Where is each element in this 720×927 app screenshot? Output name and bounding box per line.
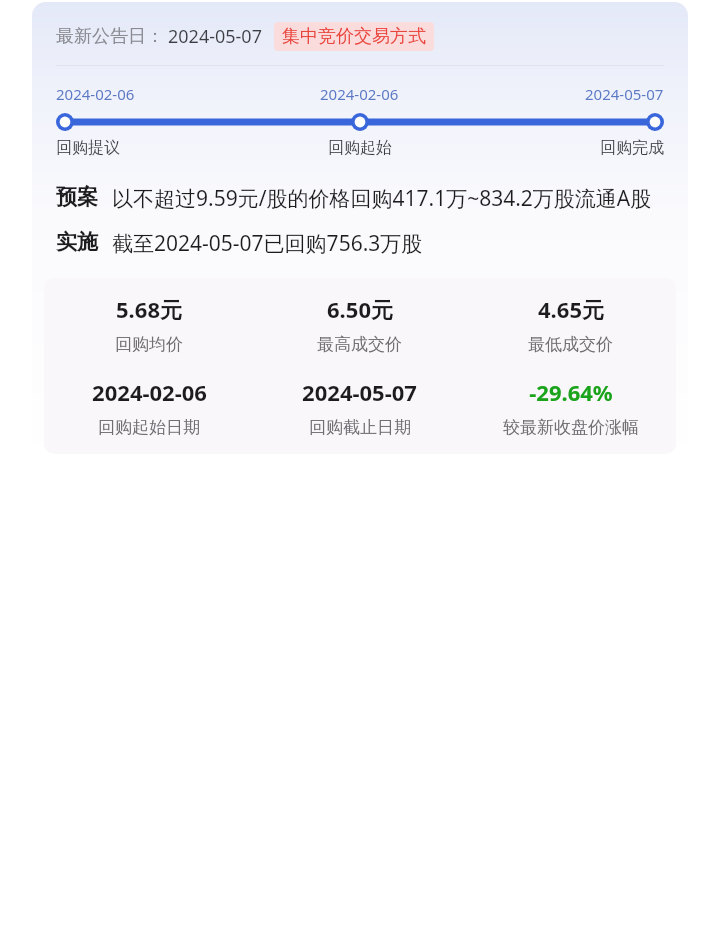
staticText: 2024-05-07 (168, 24, 262, 49)
staticText: 预案 (56, 184, 98, 210)
staticText: 5.68元 (116, 294, 182, 324)
staticText: 回购截止日期 (309, 417, 411, 438)
button[interactable]: 2024-02-06 (44, 377, 254, 438)
button[interactable]: 2024-05-07 (254, 377, 465, 438)
staticText: 较最新收盘价涨幅 (503, 417, 639, 438)
staticText: 2024-05-07 (302, 377, 417, 407)
staticText: 实施 (56, 229, 98, 255)
staticText: 4.65元 (538, 294, 604, 324)
staticText: 回购起始 (328, 138, 392, 158)
staticText: 回购均价 (115, 334, 183, 355)
staticText: 最低成交价 (528, 334, 613, 355)
staticText: -29.64% (529, 377, 613, 407)
staticText: 回购提议 (56, 138, 120, 158)
staticText: 2024-02-06 (56, 84, 135, 104)
staticText: 回购起始日期 (98, 417, 200, 438)
staticText: 截至2024-05-07已回购756.3万股 (112, 229, 423, 258)
button[interactable]: -29.64% (465, 377, 676, 438)
button[interactable]: 集中竞价交易方式 (274, 22, 434, 51)
staticText: 以不超过9.59元/股的价格回购417.1万~834.2万股流通A股 (112, 184, 652, 213)
staticText: 集中竞价交易方式 (282, 25, 426, 48)
staticText: 2024-02-06 (320, 84, 399, 104)
staticText: 回购完成 (600, 138, 664, 158)
staticText: 2024-02-06 (92, 377, 207, 407)
staticText: 2024-05-07 (585, 84, 664, 104)
button[interactable]: 6.50元 (254, 294, 465, 355)
button[interactable]: 5.68元 (44, 294, 254, 355)
staticText: 最高成交价 (317, 334, 402, 355)
staticText: 6.50元 (327, 294, 393, 324)
button[interactable]: 4.65元 (465, 294, 676, 355)
staticText: 最新公告日： (56, 25, 164, 48)
